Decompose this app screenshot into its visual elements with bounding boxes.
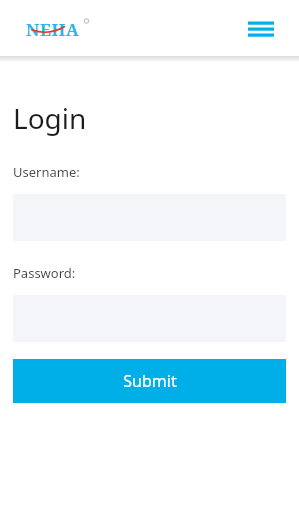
button[interactable]: Open navigation menu — [240, 14, 282, 42]
staticText: Username: — [13, 163, 80, 181]
button[interactable]: NEHA home — [26, 17, 90, 39]
staticText: Submit — [123, 370, 177, 392]
button[interactable]: Submit — [13, 359, 286, 403]
staticText: Password: — [13, 264, 76, 282]
staticText: NEHA — [26, 18, 80, 40]
staticText: Login — [13, 99, 87, 137]
